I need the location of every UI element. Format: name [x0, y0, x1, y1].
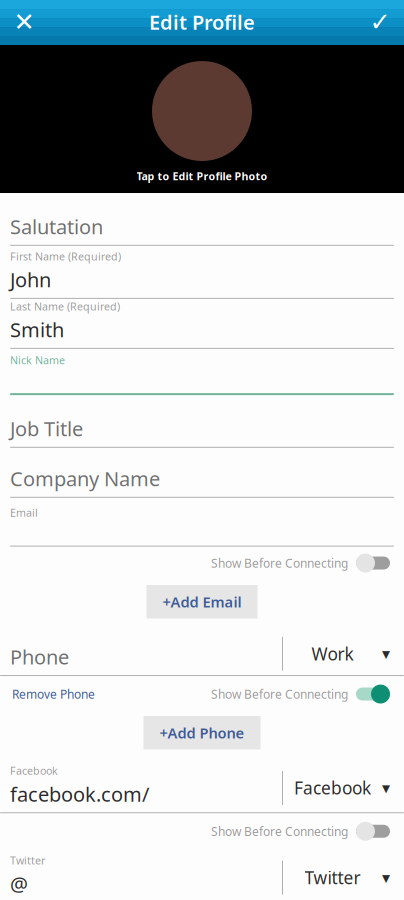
staticText: First Name (Required): [10, 249, 121, 263]
staticText: Phone: [10, 643, 69, 670]
staticText: ▾: [382, 645, 390, 663]
button[interactable]: Tap to Edit Profile Photo: [136, 61, 267, 183]
button[interactable]: Save: [356, 0, 404, 45]
staticText: Show Before Connecting: [211, 823, 348, 839]
staticText: Show Before Connecting: [211, 686, 348, 702]
button[interactable]: Twitter: [283, 861, 404, 895]
button[interactable]: Show Before Connecting: [354, 684, 392, 704]
button[interactable]: Work: [283, 637, 404, 671]
staticText: Salutation: [10, 213, 103, 240]
staticText: Facebook: [294, 776, 371, 799]
staticText: Twitter: [10, 853, 45, 867]
staticText: @: [10, 870, 28, 897]
button[interactable]: Remove Phone: [12, 686, 95, 702]
button[interactable]: +Add Phone: [143, 716, 260, 750]
staticText: ▾: [382, 779, 390, 797]
staticText: ▾: [382, 868, 390, 887]
staticText: Smith: [10, 316, 64, 343]
button[interactable]: Close: [0, 0, 48, 45]
button[interactable]: Show Before Connecting: [354, 553, 392, 573]
button[interactable]: Facebook: [283, 771, 404, 805]
staticText: John: [10, 266, 51, 293]
staticText: Job Title: [10, 415, 83, 442]
staticText: facebook.com/: [10, 781, 149, 807]
staticText: Facebook: [10, 763, 58, 778]
staticText: +Add Email: [162, 592, 241, 611]
button[interactable]: Show Before Connecting: [354, 821, 392, 841]
staticText: Company Name: [10, 465, 160, 492]
staticText: Edit Profile: [149, 9, 255, 35]
staticText: Remove Phone: [12, 686, 95, 702]
staticText: Work: [311, 642, 353, 665]
staticText: ✓: [369, 8, 390, 36]
staticText: Show Before Connecting: [211, 555, 348, 571]
button[interactable]: +Add Email: [146, 585, 257, 618]
staticText: Email: [10, 505, 38, 520]
staticText: Twitter: [304, 866, 360, 889]
staticText: +Add Phone: [159, 723, 244, 743]
staticText: Last Name (Required): [10, 299, 120, 313]
staticText: ✕: [13, 8, 34, 36]
staticText: Nick Name: [10, 353, 65, 367]
staticText: Tap to Edit Profile Photo: [136, 169, 267, 183]
